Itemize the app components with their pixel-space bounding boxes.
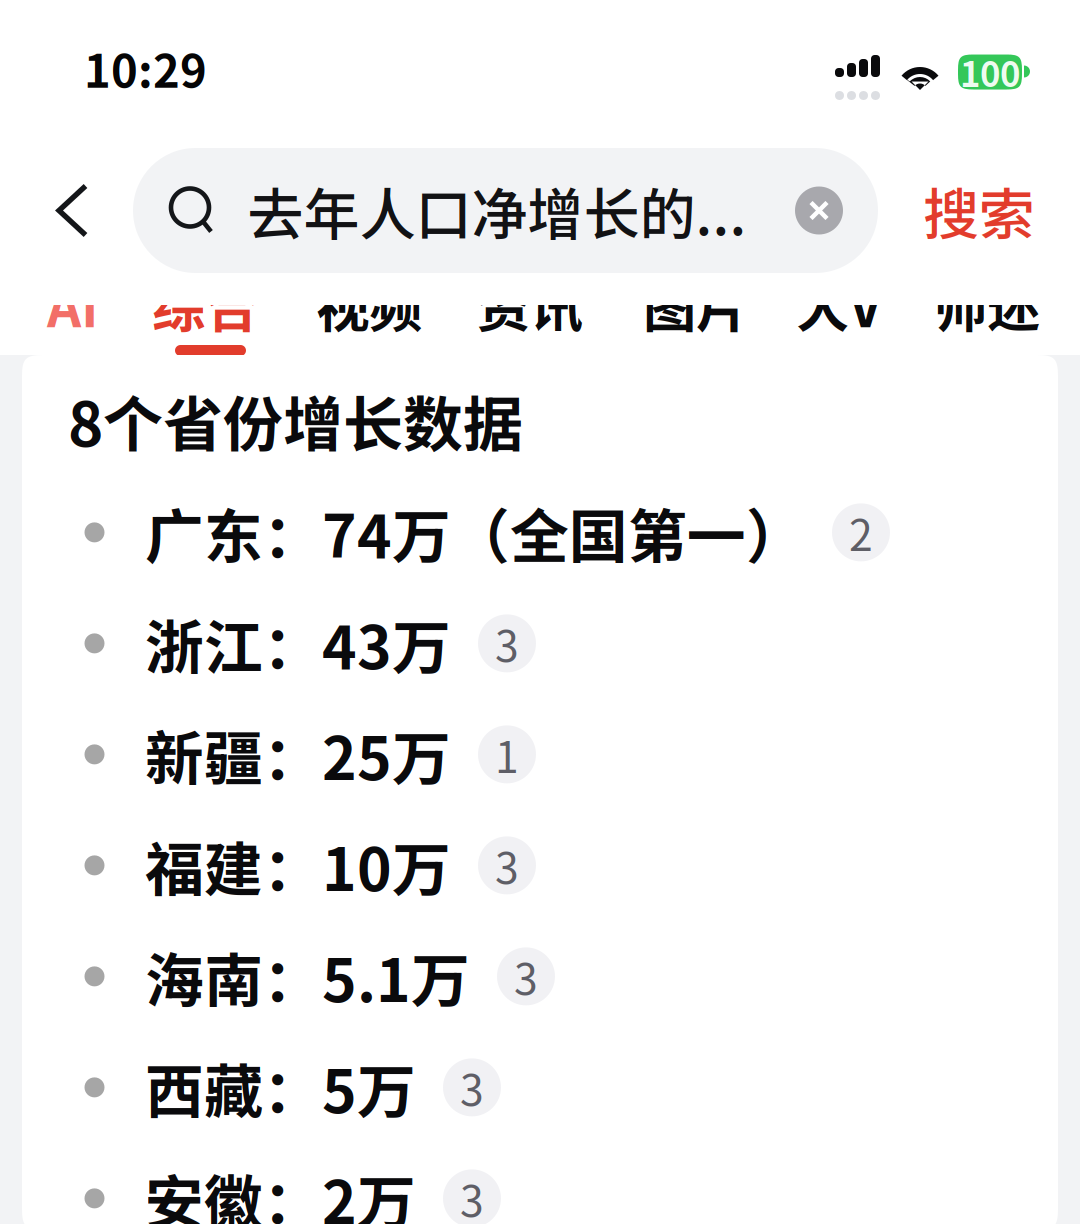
staticText: 资讯 [477,265,583,343]
staticText: 搜索 [923,170,1035,251]
button[interactable]: AI [0,276,99,332]
button[interactable]: 师述 [882,276,1040,332]
button[interactable]: 视频 [258,276,422,332]
staticText: 3 [460,1056,484,1118]
staticText: 10:29 [84,35,207,101]
staticText: 3 [495,834,519,896]
staticText: 广东：74万（全国第一） [145,490,805,575]
button[interactable]: 综合 [99,276,258,332]
staticText: 1 [495,723,519,785]
staticText: 100 [960,47,1020,97]
button[interactable]: 去年人口净增长的... [133,148,878,273]
staticText: 师述 [934,265,1040,343]
staticText: 8个省份增长数据 [68,377,523,464]
staticText: 西藏：5万 [145,1045,416,1130]
staticText: 安徽：2万 [145,1156,416,1224]
staticText: AI [47,265,99,343]
button[interactable]: 大V [749,276,882,332]
staticText: 3 [460,1167,484,1224]
staticText: 大V [796,265,882,343]
staticText: 3 [495,612,519,674]
staticText: 2 [849,501,873,563]
staticText: 视频 [316,265,422,343]
staticText: 海南：5.1万 [145,934,470,1019]
staticText: 福建：10万 [145,823,451,908]
button[interactable]: 图片 [583,276,749,332]
button[interactable]: Back [0,148,133,273]
button[interactable]: 资讯 [422,276,583,332]
button[interactable]: 搜索 [878,148,1080,273]
staticText: 3 [514,945,538,1007]
staticText: 去年人口净增长的... [247,170,746,251]
staticText: 新疆：25万 [145,712,451,797]
staticText: 浙江：43万 [145,601,451,686]
staticText: 综合 [152,265,258,343]
staticText: 图片 [643,265,749,343]
